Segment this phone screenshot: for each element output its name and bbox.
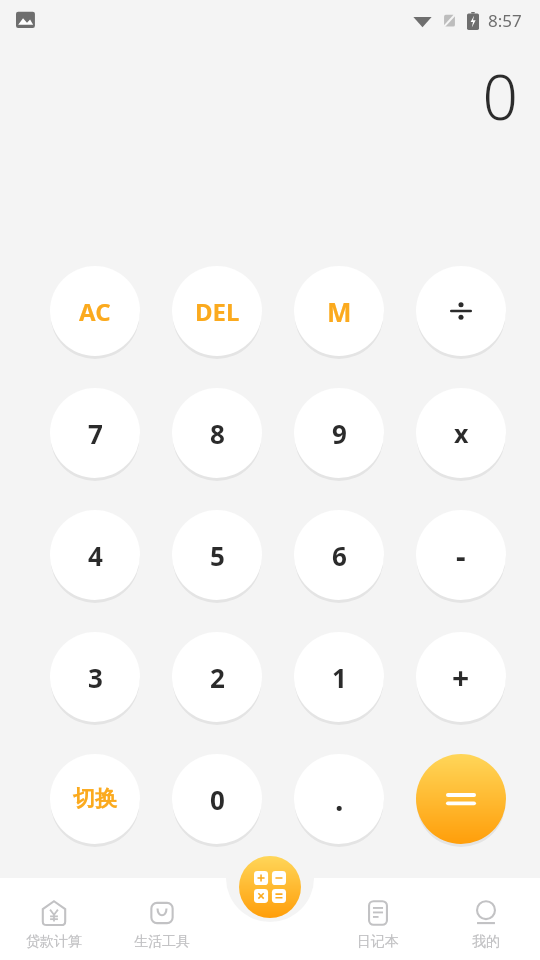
staticText: 7 <box>88 416 103 451</box>
staticText: 4 <box>88 538 103 573</box>
staticText: AC <box>79 295 111 328</box>
button[interactable]: 5 <box>172 510 262 600</box>
staticText: 1 <box>332 660 347 695</box>
staticText: 3 <box>88 660 103 695</box>
staticText: 生活工具 <box>134 933 190 951</box>
button[interactable]: 切换 <box>50 754 140 844</box>
button[interactable]: DEL <box>172 266 262 356</box>
button[interactable]: 我的 <box>432 887 540 951</box>
button[interactable]: 6 <box>294 510 384 600</box>
staticText: 贷款计算 <box>26 933 82 951</box>
staticText: 0 <box>210 782 225 817</box>
staticText: 5 <box>210 538 225 573</box>
button[interactable]: 0 <box>172 754 262 844</box>
staticText: 切换 <box>73 785 117 813</box>
staticText: 我的 <box>472 933 500 951</box>
staticText: 0 <box>482 54 518 138</box>
staticText: 2 <box>210 660 225 695</box>
button[interactable]: 贷款计算 <box>0 887 108 951</box>
button[interactable]: - <box>416 510 506 600</box>
staticText: 8 <box>210 416 225 451</box>
button[interactable]: 3 <box>50 632 140 722</box>
button[interactable]: + <box>416 632 506 722</box>
staticText: 9 <box>332 416 347 451</box>
button[interactable] <box>416 266 506 356</box>
button[interactable]: 日记本 <box>324 887 432 951</box>
button[interactable]: . <box>294 754 384 844</box>
button[interactable] <box>416 754 506 844</box>
staticText: 6 <box>332 538 347 573</box>
button[interactable]: 9 <box>294 388 384 478</box>
staticText: + <box>452 657 470 698</box>
button[interactable]: M <box>294 266 384 356</box>
button[interactable]: 2 <box>172 632 262 722</box>
button[interactable]: Calculator <box>239 856 301 918</box>
staticText: 8:57 <box>488 9 522 32</box>
button[interactable]: AC <box>50 266 140 356</box>
button[interactable]: 1 <box>294 632 384 722</box>
button[interactable]: 8 <box>172 388 262 478</box>
button[interactable]: x <box>416 388 506 478</box>
button[interactable]: 生活工具 <box>108 887 216 951</box>
staticText: . <box>335 779 344 820</box>
staticText: - <box>456 535 466 576</box>
staticText: M <box>327 294 352 329</box>
button[interactable]: 7 <box>50 388 140 478</box>
button[interactable]: 4 <box>50 510 140 600</box>
staticText: x <box>454 416 469 450</box>
staticText: DEL <box>195 295 240 328</box>
staticText: 日记本 <box>357 933 399 951</box>
